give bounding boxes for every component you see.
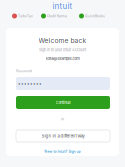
staticText: or xyxy=(61,117,64,121)
button[interactable]: Sign in a different way xyxy=(16,130,110,142)
staticText: intuit xyxy=(52,1,72,11)
staticText: New to Intuit? Sign up xyxy=(44,149,80,154)
staticText: TurboTax xyxy=(18,14,33,18)
staticText: •••••••• xyxy=(18,81,42,86)
staticText: Credit Karma xyxy=(47,14,67,18)
staticText: sofia@example.com xyxy=(45,56,79,61)
staticText: Sign in a different way xyxy=(41,133,84,139)
staticText: Welcome back xyxy=(38,36,86,45)
button[interactable]: Continue xyxy=(16,96,110,109)
staticText: Password xyxy=(16,69,32,73)
staticText: Continue xyxy=(55,100,70,105)
staticText: Sign in to your Intuit Account xyxy=(39,48,86,52)
button[interactable]: New to Intuit? Sign up xyxy=(0,149,125,154)
staticText: QuickBooks xyxy=(85,14,105,18)
